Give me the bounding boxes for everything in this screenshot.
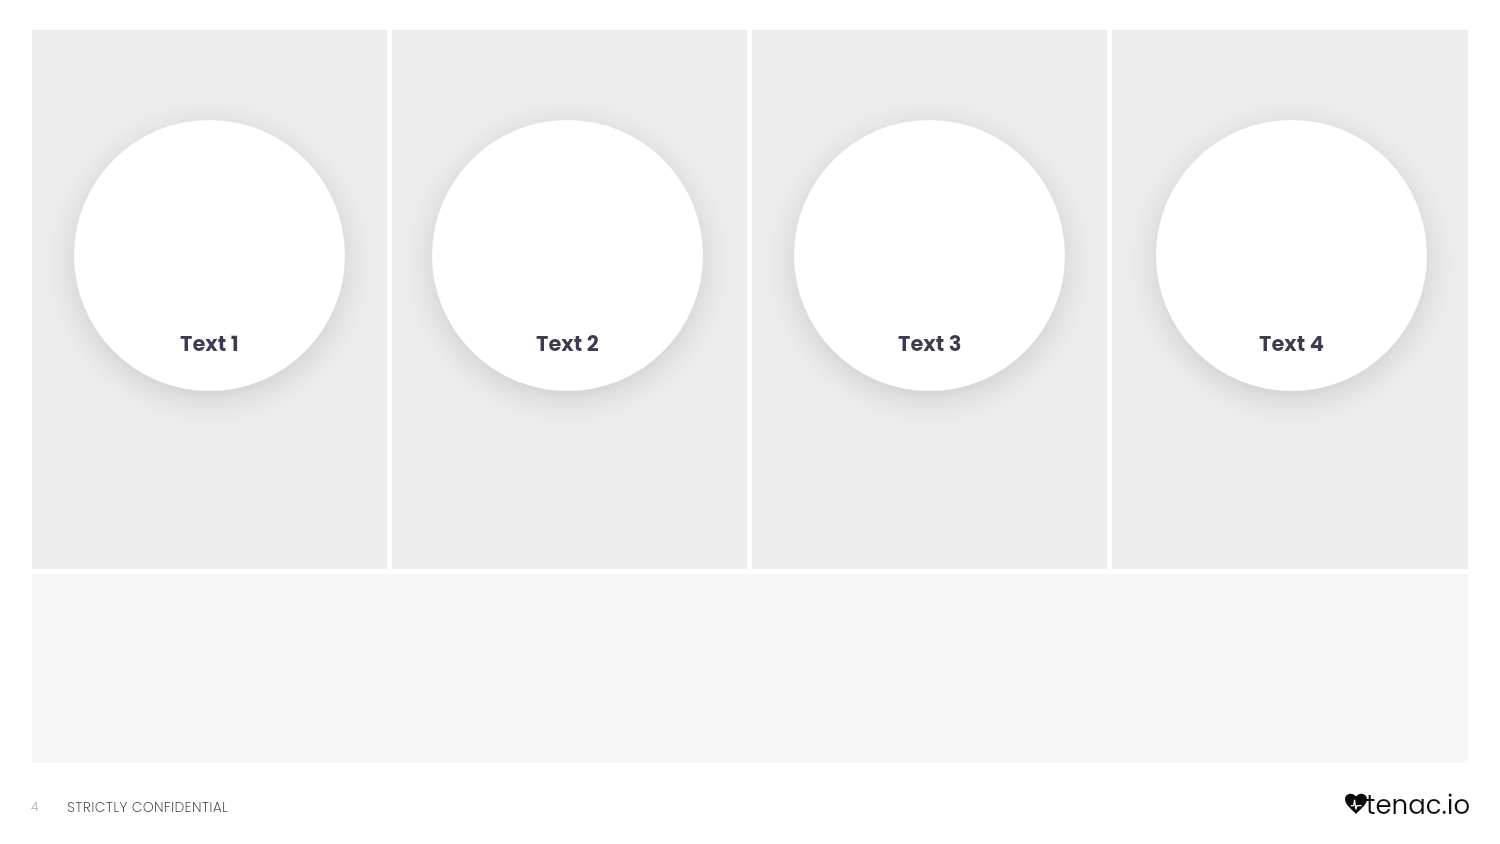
- staticText: Text 3: [898, 329, 962, 358]
- staticText: 4: [31, 798, 39, 815]
- button[interactable]: Text 2: [392, 30, 747, 569]
- button[interactable]: tenac.io: [1345, 786, 1469, 818]
- staticText: Text 2: [536, 329, 599, 358]
- staticText: Text 1: [180, 329, 239, 358]
- button[interactable]: [794, 120, 1065, 391]
- button[interactable]: Text 3: [752, 30, 1107, 569]
- button[interactable]: [74, 120, 345, 391]
- staticText: Text 4: [1259, 329, 1324, 358]
- button[interactable]: Text 1: [32, 30, 387, 569]
- button[interactable]: Text 4: [1112, 30, 1468, 569]
- staticText: tenac.io: [1366, 787, 1471, 819]
- staticText: STRICTLY CONFIDENTIAL: [67, 797, 229, 817]
- button[interactable]: [432, 120, 703, 391]
- button[interactable]: [1156, 120, 1427, 391]
